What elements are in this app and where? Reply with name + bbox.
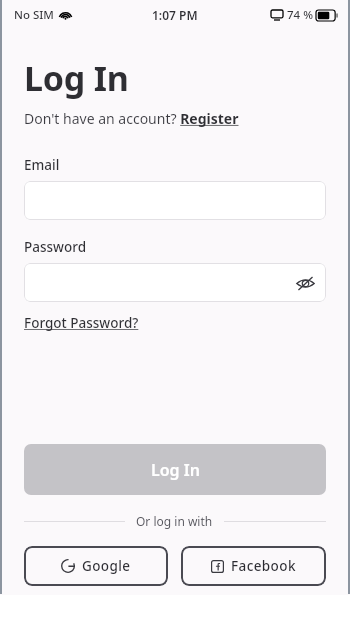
button[interactable]: Log In xyxy=(24,444,326,495)
staticText: Email xyxy=(24,156,60,174)
staticText: Don't have an account? Register xyxy=(24,109,239,128)
button[interactable]: Google xyxy=(24,546,168,586)
button[interactable] xyxy=(24,181,326,220)
button[interactable]: Facebook xyxy=(181,546,326,586)
staticText: Password xyxy=(24,238,87,256)
staticText: Google xyxy=(82,557,131,575)
staticText: Log In xyxy=(24,55,129,101)
staticText: 74 % xyxy=(287,7,313,23)
staticText: No SIM xyxy=(14,7,54,23)
button[interactable]: Don't have an account? Register xyxy=(24,109,239,128)
staticText: Log In xyxy=(151,459,200,481)
staticText: 1:07 PM xyxy=(152,7,198,23)
button[interactable]: Show password xyxy=(24,263,326,302)
staticText: Or log in with xyxy=(136,513,213,529)
staticText: Forgot Password? xyxy=(24,314,139,332)
button[interactable]: Forgot Password? xyxy=(24,314,139,332)
staticText: Facebook xyxy=(231,557,296,575)
button[interactable]: Show password xyxy=(294,272,316,294)
